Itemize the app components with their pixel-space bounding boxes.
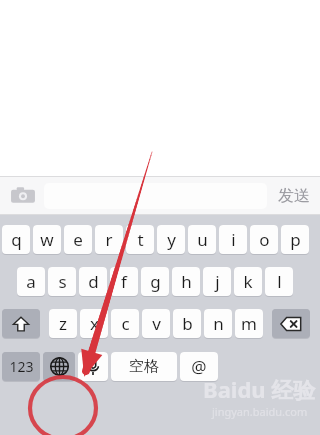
staticText: o <box>259 228 270 251</box>
button[interactable]: p <box>281 225 309 254</box>
button[interactable]: q <box>2 225 30 254</box>
staticText: h <box>181 270 192 293</box>
button[interactable]: g <box>141 267 169 296</box>
button[interactable]: j <box>203 267 231 296</box>
staticText: @ <box>191 355 207 378</box>
button[interactable]: Backspace <box>272 309 310 338</box>
staticText: t <box>137 228 144 251</box>
button[interactable]: m <box>235 309 263 338</box>
button[interactable]: r <box>95 225 123 254</box>
button[interactable]: Camera <box>8 181 38 211</box>
button[interactable]: o <box>250 225 278 254</box>
button[interactable]: Switch keyboard language <box>43 352 75 381</box>
staticText: f <box>121 270 127 293</box>
staticText: 发送 <box>278 186 310 206</box>
button[interactable]: Shift <box>2 309 40 338</box>
staticText: x <box>90 312 99 335</box>
button[interactable]: a <box>17 267 45 296</box>
button[interactable]: e <box>64 225 92 254</box>
button[interactable]: x <box>80 309 108 338</box>
staticText: g <box>150 270 161 293</box>
button[interactable]: 123 <box>2 352 40 381</box>
button[interactable] <box>44 183 267 209</box>
staticText: u <box>197 228 208 251</box>
button[interactable]: k <box>234 267 262 296</box>
staticText: v <box>152 312 161 335</box>
staticText: l <box>277 270 282 293</box>
button[interactable]: h <box>172 267 200 296</box>
staticText: w <box>40 228 54 251</box>
button[interactable]: l <box>265 267 293 296</box>
button[interactable]: b <box>173 309 201 338</box>
button[interactable]: d <box>79 267 107 296</box>
staticText: s <box>58 270 67 293</box>
staticText: n <box>213 312 224 335</box>
button[interactable]: n <box>204 309 232 338</box>
staticText: 空格 <box>129 357 159 376</box>
button[interactable]: i <box>219 225 247 254</box>
button[interactable]: y <box>157 225 185 254</box>
staticText: q <box>11 228 22 251</box>
button[interactable]: 空格 <box>111 352 177 381</box>
staticText: j <box>215 270 220 293</box>
staticText: m <box>241 312 257 335</box>
staticText: 123 <box>9 357 34 376</box>
staticText: k <box>243 270 253 293</box>
button[interactable]: v <box>142 309 170 338</box>
button[interactable]: 发送 <box>276 186 312 206</box>
button[interactable]: w <box>33 225 61 254</box>
staticText: e <box>73 228 83 251</box>
staticText: a <box>26 270 36 293</box>
button[interactable]: z <box>49 309 77 338</box>
button[interactable]: u <box>188 225 216 254</box>
staticText: y <box>167 228 176 251</box>
staticText: d <box>88 270 99 293</box>
button[interactable]: f <box>110 267 138 296</box>
button[interactable]: t <box>126 225 154 254</box>
button[interactable]: @ <box>180 352 218 381</box>
staticText: z <box>59 312 67 335</box>
staticText: r <box>105 228 113 251</box>
staticText: i <box>231 228 236 251</box>
staticText: b <box>182 312 193 335</box>
button[interactable]: c <box>111 309 139 338</box>
staticText: jingyan.baidu.com <box>212 404 308 419</box>
staticText: p <box>290 228 301 251</box>
staticText: Baidu 经验 <box>203 374 316 404</box>
button[interactable]: Voice input <box>78 352 108 381</box>
button[interactable]: s <box>48 267 76 296</box>
staticText: c <box>121 312 130 335</box>
